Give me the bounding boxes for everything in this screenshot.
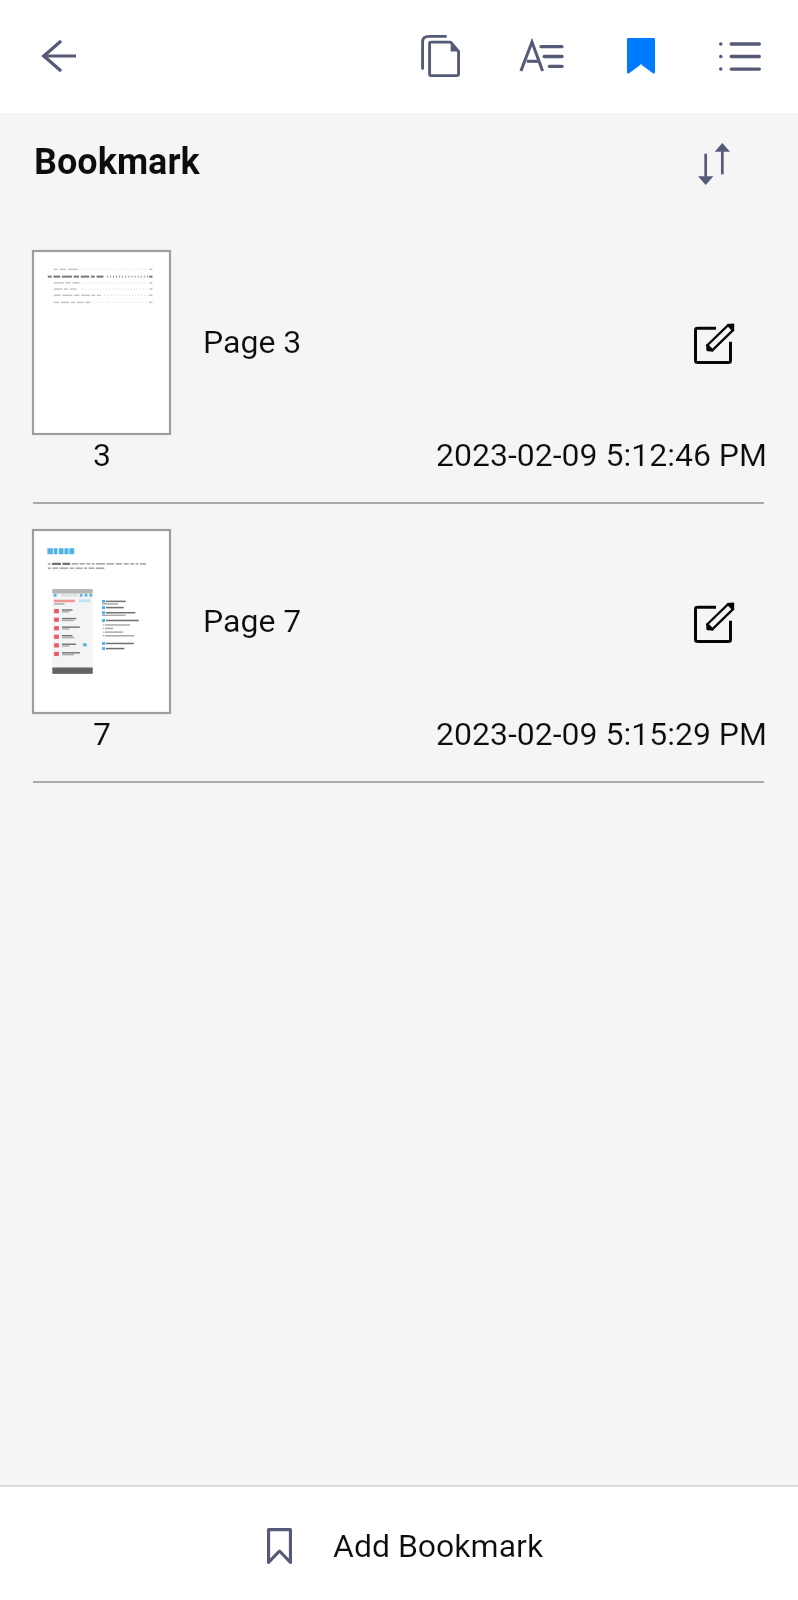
staticText: Page 7 (203, 602, 302, 640)
button[interactable]: Page thumbnails (397, 12, 485, 100)
button[interactable]: 7 (0, 504, 798, 782)
button[interactable]: Outline (696, 12, 784, 100)
button[interactable]: Text settings (497, 12, 585, 100)
staticText: 7 (93, 715, 111, 753)
button[interactable]: Bookmarks (597, 12, 685, 100)
staticText: Add Bookmark (333, 1527, 544, 1565)
button[interactable]: Edit bookmark (672, 301, 756, 385)
staticText: 2023-02-09 5:15:29 PM (436, 715, 767, 753)
button[interactable]: Sort (672, 122, 756, 206)
button[interactable]: Navigate up (17, 14, 101, 98)
staticText: Page 3 (203, 323, 302, 361)
staticText: Bookmark (34, 141, 200, 183)
staticText: 3 (93, 436, 111, 474)
staticText: 2023-02-09 5:12:46 PM (436, 436, 767, 474)
button[interactable]: 3 (0, 225, 798, 503)
button[interactable]: Add Bookmark (243, 1513, 568, 1579)
button[interactable]: Edit bookmark (672, 580, 756, 664)
